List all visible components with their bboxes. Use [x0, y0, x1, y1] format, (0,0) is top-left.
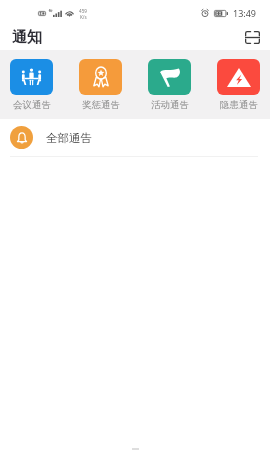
staticText: 通知 [12, 28, 42, 47]
button[interactable]: 活动通告 [148, 59, 191, 111]
staticText: 全部通告 [46, 131, 92, 145]
staticText: 13:49 [233, 7, 257, 19]
staticText: 459 [79, 8, 87, 14]
staticText: 活动通告 [151, 99, 189, 111]
staticText: 隐患通告 [220, 99, 258, 111]
button[interactable]: 全部通告 [0, 119, 270, 156]
staticText: 会议通告 [13, 99, 51, 111]
staticText: 奖惩通告 [82, 99, 120, 111]
button[interactable]: 隐患通告 [217, 59, 260, 111]
staticText: K/s [80, 14, 87, 20]
button[interactable]: Scan QR code [240, 25, 264, 49]
button[interactable]: 奖惩通告 [79, 59, 122, 111]
button[interactable]: 会议通告 [10, 59, 53, 111]
